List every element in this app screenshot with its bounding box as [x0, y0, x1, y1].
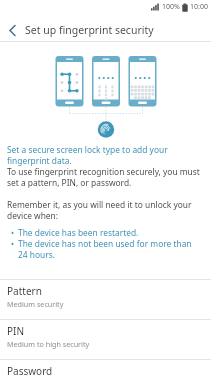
- staticText: Remember it, as you will need it to unlo…: [7, 199, 192, 221]
- button[interactable]: Pattern: [0, 280, 211, 319]
- staticText: The device has not been used for more th…: [18, 238, 192, 260]
- staticText: 10:00: [190, 2, 208, 12]
- staticText: •: [11, 227, 15, 238]
- staticText: Medium security: [7, 299, 64, 309]
- staticText: Password: [7, 364, 53, 376]
- button[interactable]: [0, 19, 24, 41]
- staticText: Pattern: [7, 284, 42, 298]
- button[interactable]: PIN: [0, 320, 211, 359]
- staticText: •: [11, 238, 15, 249]
- staticText: Set a secure screen lock type to add you…: [7, 144, 168, 166]
- staticText: PIN: [7, 324, 25, 338]
- staticText: 100%: [162, 2, 180, 12]
- button[interactable]: Password: [0, 360, 211, 376]
- staticText: Medium to high security: [7, 339, 90, 349]
- staticText: To use fingerprint recognition securely,…: [7, 166, 200, 188]
- staticText: The device has been restarted.: [18, 227, 139, 238]
- staticText: Set up fingerprint security: [25, 23, 154, 37]
